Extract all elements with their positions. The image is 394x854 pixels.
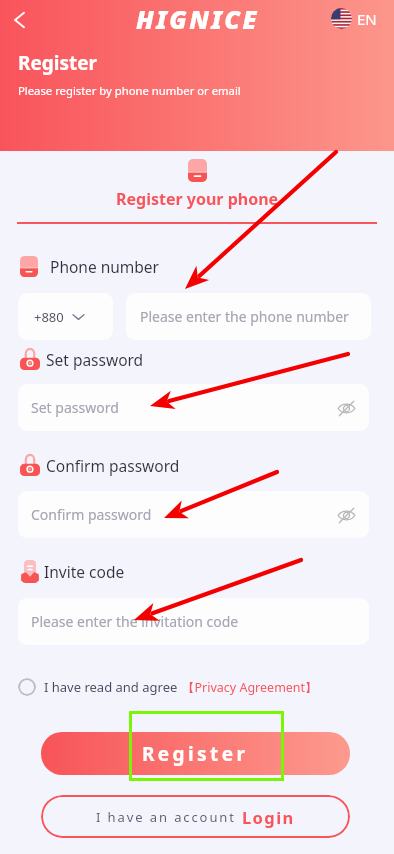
staticText: Confirm password (46, 455, 180, 476)
staticText: Please enter the invitation code (31, 612, 239, 631)
staticText: Login (242, 806, 295, 828)
button[interactable]: Please enter the invitation code (18, 598, 369, 645)
button[interactable]: Back (2, 3, 36, 37)
staticText: I have read and agree (44, 678, 178, 696)
staticText: HIGNICE (136, 2, 259, 36)
staticText: Set password (31, 398, 119, 417)
button[interactable]: I have an account (41, 795, 350, 838)
staticText: Invite code (44, 561, 125, 582)
staticText: Register your phone (116, 188, 279, 210)
staticText: Please register by phone number or email (18, 83, 241, 98)
staticText: Set password (46, 349, 144, 370)
button[interactable]: Language EN (331, 8, 377, 29)
button[interactable]: +880 (18, 293, 113, 340)
staticText: Please enter the phone number (140, 307, 349, 326)
staticText: EN (357, 9, 377, 29)
staticText: Register (18, 50, 98, 76)
button[interactable]: Set password (18, 384, 369, 431)
button[interactable]: Please enter the phone number (126, 293, 371, 340)
button[interactable]: Confirm password (18, 491, 369, 538)
staticText: Phone number (50, 256, 160, 277)
staticText: I have an account (96, 808, 236, 826)
staticText: +880 (34, 308, 64, 326)
button[interactable]: I have read and agree (16, 676, 320, 698)
button[interactable]: Show password (334, 396, 358, 420)
staticText: Register (142, 741, 249, 767)
staticText: Confirm password (31, 505, 152, 524)
button[interactable]: Register (41, 732, 350, 775)
button[interactable]: Show password (334, 503, 358, 527)
staticText: 【Privacy Agreement】 (182, 679, 318, 696)
